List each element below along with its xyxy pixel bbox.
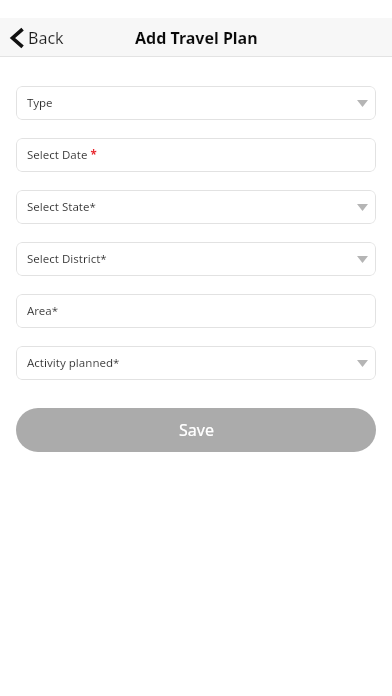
button[interactable]: Select Date * (16, 138, 376, 172)
button[interactable]: Activity planned* (16, 346, 376, 380)
staticText: Type (27, 95, 53, 111)
staticText: Activity planned* (27, 355, 120, 371)
staticText: Area* (27, 303, 59, 319)
button[interactable]: Back (8, 23, 66, 53)
button[interactable]: Select State* (16, 190, 376, 224)
staticText: Select Date * (27, 147, 97, 163)
staticText: Add Travel Plan (135, 27, 258, 49)
staticText: Back (28, 27, 64, 49)
staticText: Select District* (27, 251, 107, 267)
staticText: Save (179, 419, 214, 441)
button[interactable]: Area* (16, 294, 376, 328)
button[interactable]: Type (16, 86, 376, 120)
button[interactable]: Save (16, 408, 376, 452)
staticText: Select State* (27, 199, 96, 215)
button[interactable]: Select District* (16, 242, 376, 276)
